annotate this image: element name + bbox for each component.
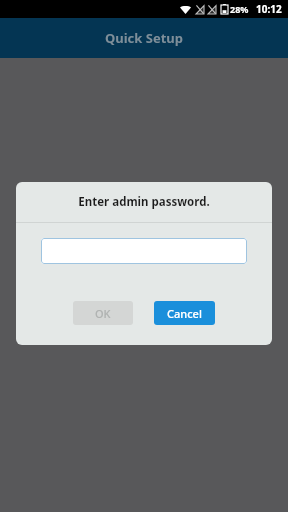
staticText: Enter admin password.: [78, 194, 210, 210]
staticText: 10:12: [256, 2, 282, 16]
staticText: 28%: [230, 3, 249, 15]
button[interactable]: Cancel: [154, 301, 215, 325]
staticText: Cancel: [167, 306, 202, 321]
staticText: Quick Setup: [105, 29, 184, 47]
button[interactable]: OK: [73, 301, 133, 325]
button[interactable]: [41, 238, 247, 264]
staticText: OK: [95, 306, 111, 321]
